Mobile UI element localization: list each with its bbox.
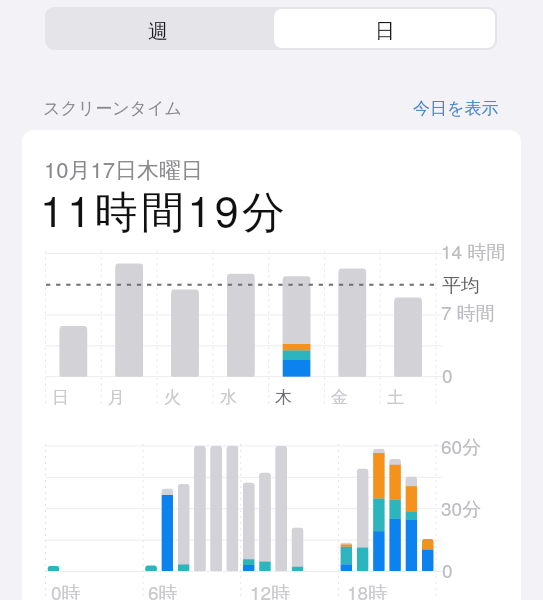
staticText: 日 <box>52 387 69 408</box>
staticText: 週 <box>148 19 168 44</box>
staticText: 土 <box>387 387 404 408</box>
staticText: 日 <box>375 19 395 44</box>
button[interactable]: 今日を表示 <box>413 98 499 119</box>
staticText: 11時間19分 <box>40 178 289 240</box>
staticText: 木 <box>275 387 292 408</box>
staticText: 30分 <box>441 494 482 521</box>
staticText: 10月17日木曜日 <box>44 153 203 185</box>
staticText: 60分 <box>441 432 482 459</box>
staticText: 金 <box>331 387 348 408</box>
staticText: 0 <box>442 361 453 388</box>
staticText: 水 <box>220 387 237 408</box>
staticText: 0 <box>442 556 453 583</box>
staticText: 12時 <box>250 578 291 600</box>
staticText: 火 <box>164 387 181 408</box>
staticText: 6時 <box>148 578 178 600</box>
staticText: 14 時間 <box>441 237 506 264</box>
staticText: 月 <box>108 387 125 408</box>
staticText: 平均 <box>442 274 480 298</box>
staticText: スクリーンタイム <box>43 98 182 119</box>
button[interactable]: 週 <box>45 7 271 55</box>
staticText: 今日を表示 <box>413 98 499 119</box>
button[interactable]: 日 <box>274 9 495 48</box>
staticText: 18時 <box>347 578 388 600</box>
staticText: 0時 <box>51 578 81 600</box>
staticText: 7 時間 <box>441 298 495 325</box>
